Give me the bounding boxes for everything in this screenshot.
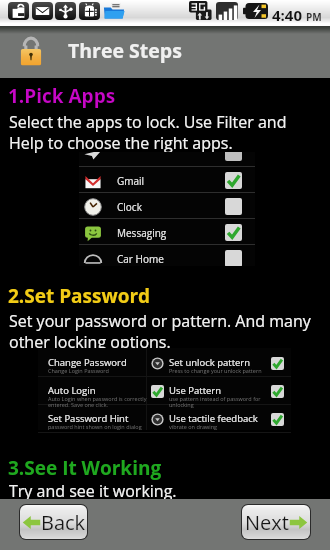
staticText: Select the apps to lock. Use Filter and … — [9, 111, 287, 154]
staticText: vibrate on drawing — [169, 423, 218, 430]
staticText: Clock — [117, 200, 142, 214]
staticText: Change Password — [48, 356, 127, 369]
staticText: Car Home — [117, 252, 164, 266]
staticText: Auto Login — [48, 384, 96, 397]
staticText: Use tactile feedback — [169, 412, 258, 425]
staticText: 4:40 — [272, 5, 303, 25]
staticText: Auto Login when password is correctly en… — [48, 395, 147, 409]
staticText: Set Password Hint — [48, 412, 129, 425]
staticText: 3.See It Working — [8, 455, 162, 481]
button[interactable]: Back — [20, 505, 87, 539]
staticText: Back — [41, 509, 86, 536]
staticText: Try and see it working. — [9, 480, 177, 502]
staticText: PM — [306, 10, 322, 24]
staticText: 2.Set Password — [8, 283, 151, 309]
staticText: Next — [245, 509, 289, 536]
staticText: Three Steps — [68, 37, 182, 64]
staticText: Set unlock pattern — [169, 356, 251, 369]
staticText: use pattern instead of password for unlo… — [169, 395, 261, 409]
staticText: password hint shown on login dialog — [48, 423, 142, 430]
staticText: Use Pattern — [169, 384, 222, 397]
staticText: 1.Pick Apps — [8, 83, 116, 109]
staticText: Gmail — [117, 174, 145, 188]
button[interactable]: Next — [242, 505, 310, 539]
staticText: Set your password or pattern. And many o… — [9, 310, 311, 353]
staticText: Change Login Password — [48, 367, 109, 374]
staticText: Messaging — [117, 226, 167, 240]
staticText: Press to change your unlock pattern — [169, 367, 262, 374]
